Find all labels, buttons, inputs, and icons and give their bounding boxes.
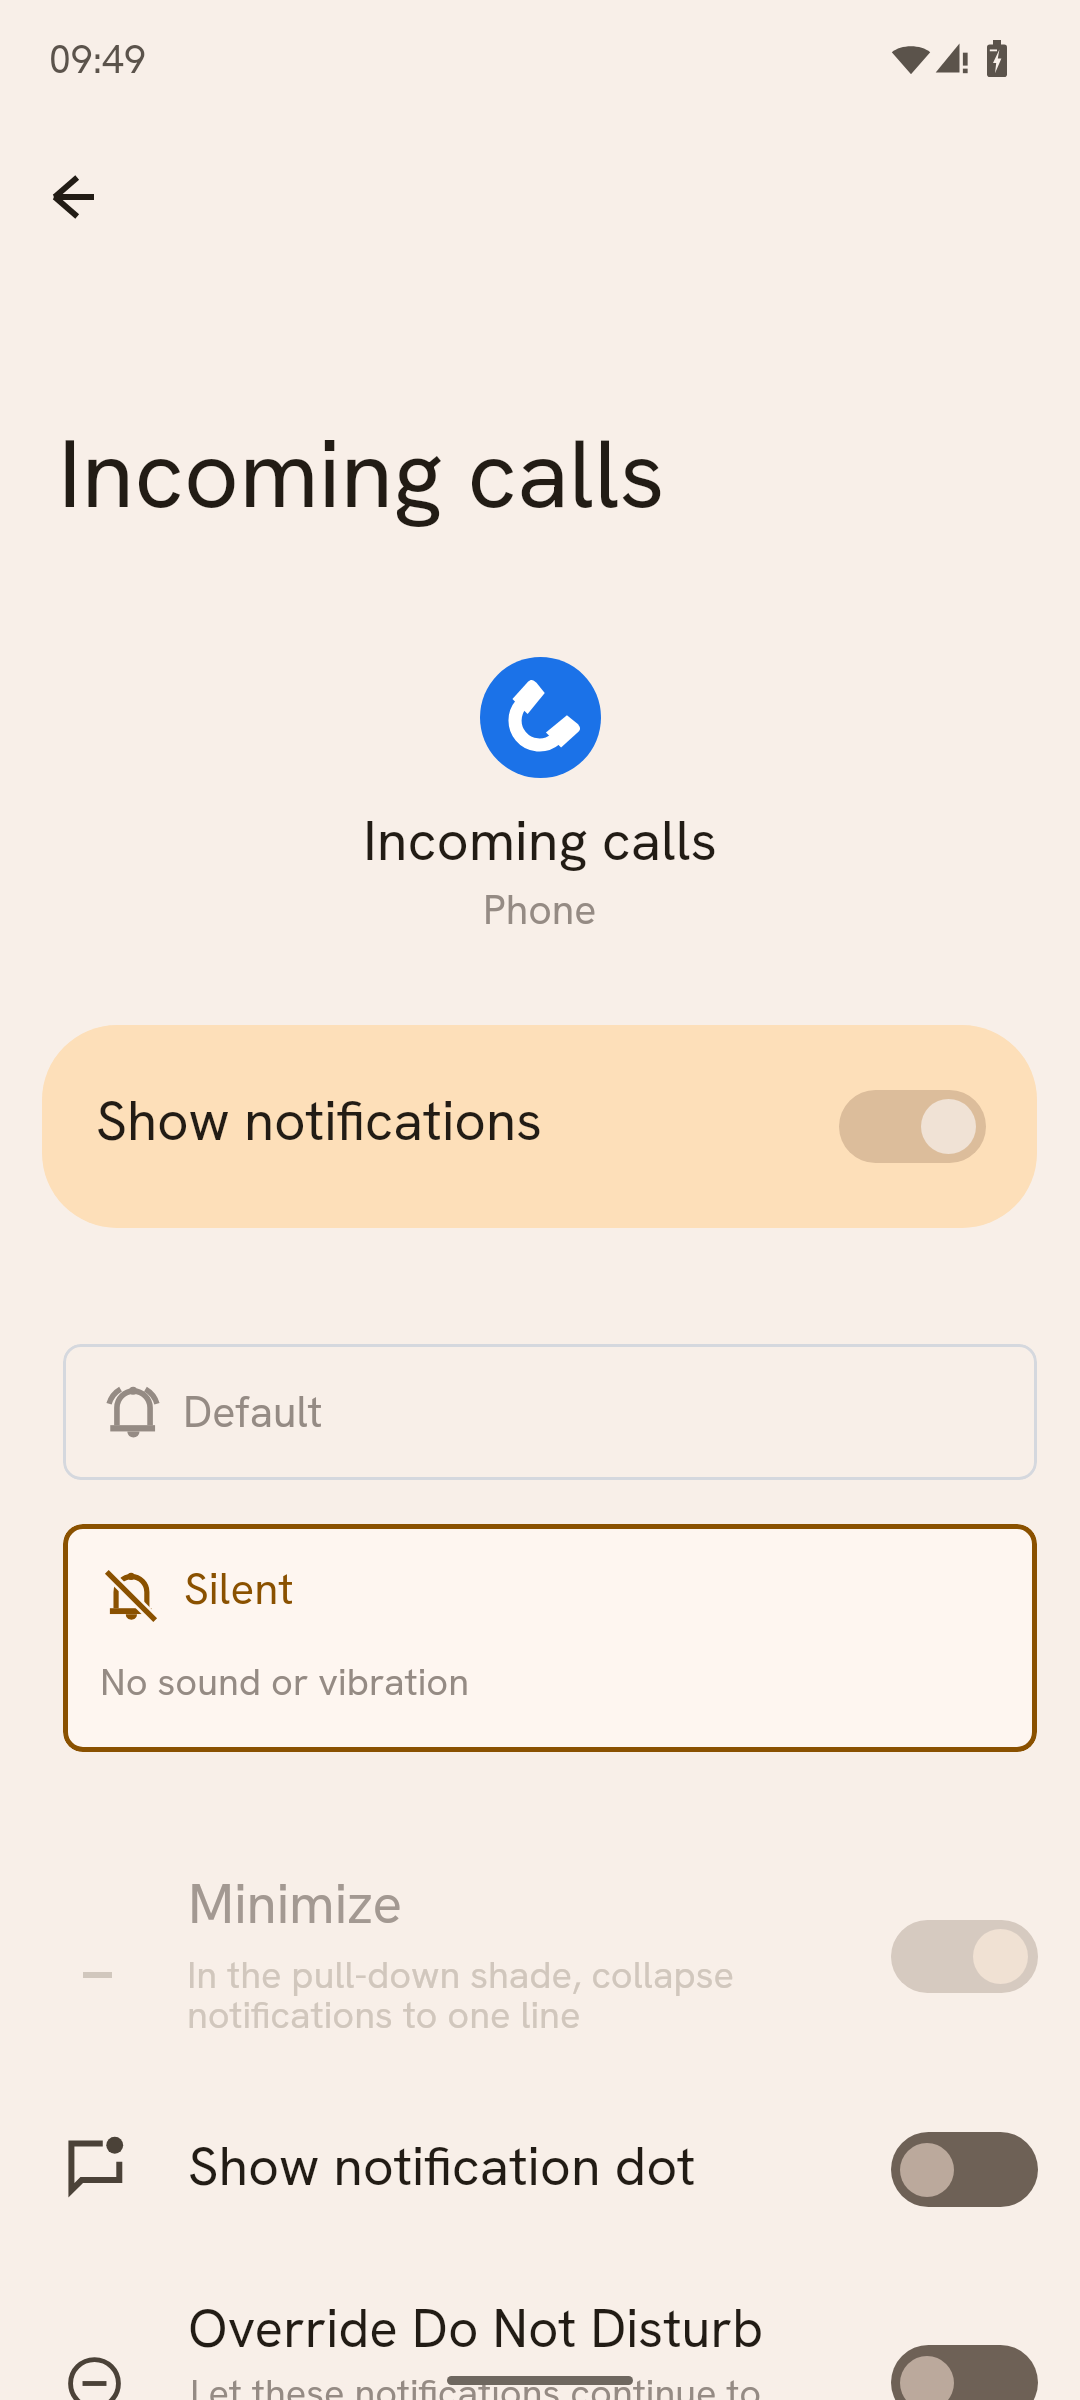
staticText: Show notification dot (188, 2131, 696, 2201)
staticText: Phone (483, 883, 597, 936)
button[interactable]: Override Do Not Disturb (0, 2270, 1080, 2400)
button[interactable]: Silent (63, 1524, 1037, 1752)
button[interactable]: Default (63, 1344, 1037, 1480)
staticText: Override Do Not Disturb (188, 2294, 764, 2363)
staticText: Incoming calls (363, 804, 717, 877)
button[interactable]: Minimize (0, 1852, 1080, 2048)
staticText: Minimize (188, 1868, 403, 1940)
staticText: 09:49 (49, 34, 146, 85)
staticText: Show notifications (96, 1085, 542, 1157)
staticText: Default (183, 1384, 323, 1440)
button[interactable]: Back (10, 134, 136, 260)
button[interactable]: Show notifications (42, 1025, 1037, 1228)
staticText: Let these notifications continue to inte… (190, 2368, 790, 2400)
button[interactable]: Show notification dot (0, 2110, 1080, 2230)
staticText: No sound or vibration (100, 1657, 469, 1707)
staticText: In the pull-down shade, collapse notific… (187, 1950, 767, 2039)
staticText: Incoming calls (58, 411, 665, 536)
staticText: Silent (184, 1560, 294, 1617)
